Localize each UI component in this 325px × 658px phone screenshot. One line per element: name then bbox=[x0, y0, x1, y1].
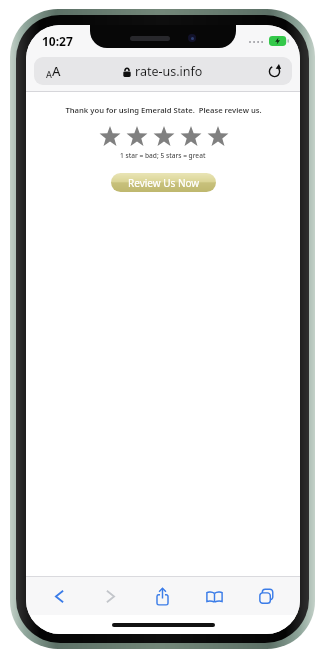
button[interactable]: Tabs bbox=[240, 577, 292, 615]
button[interactable]: Reload bbox=[263, 60, 285, 82]
button[interactable] bbox=[204, 124, 231, 150]
staticText: A bbox=[46, 68, 52, 80]
staticText: Review Us Now bbox=[128, 176, 200, 190]
staticText: A bbox=[52, 62, 61, 80]
button[interactable]: Page settings bbox=[34, 57, 69, 85]
button[interactable]: Back bbox=[34, 577, 85, 615]
button[interactable]: Forward bbox=[85, 577, 136, 615]
button[interactable] bbox=[96, 124, 123, 150]
staticText: 10:27 bbox=[42, 33, 73, 49]
staticText: Thank you for using Emerald State. Pleas… bbox=[65, 105, 262, 115]
button[interactable]: Bookmarks bbox=[188, 577, 240, 615]
button[interactable] bbox=[150, 124, 177, 150]
button[interactable] bbox=[123, 124, 150, 150]
button[interactable]: Review Us Now bbox=[111, 173, 216, 192]
button[interactable] bbox=[177, 124, 204, 150]
staticText: 1 star = bad; 5 stars = great bbox=[120, 151, 206, 160]
other: Star rating bbox=[96, 124, 231, 150]
button[interactable]: Share bbox=[136, 577, 188, 615]
staticText: rate-us.info bbox=[135, 63, 203, 80]
button[interactable]: Page settings bbox=[34, 57, 292, 85]
